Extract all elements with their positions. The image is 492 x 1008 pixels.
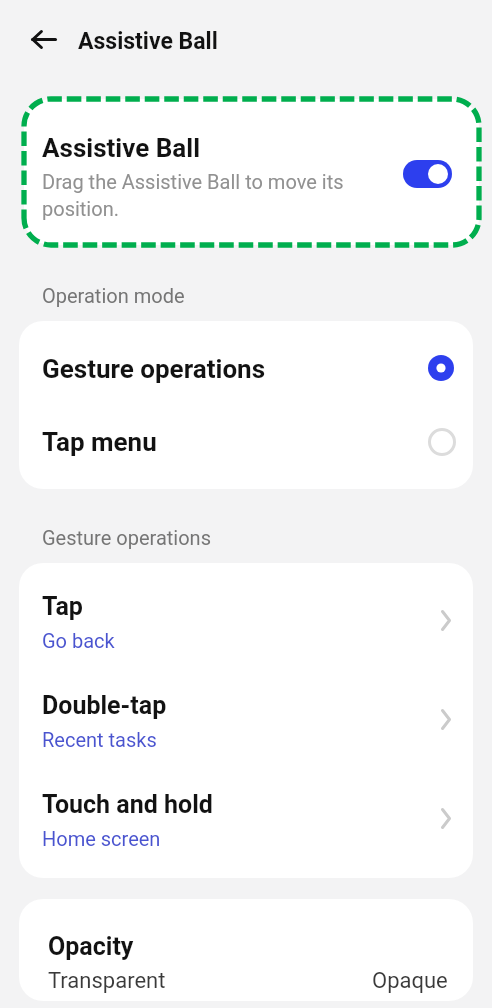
button[interactable]: Assistive Ball toggle <box>403 160 452 188</box>
button[interactable]: Tap menu <box>19 405 473 478</box>
staticText: Assistive Ball <box>78 28 218 55</box>
staticText: Drag the Assistive Ball to move its posi… <box>42 168 344 222</box>
staticText: Tap <box>42 592 83 621</box>
staticText: Go back <box>42 629 115 652</box>
staticText: Recent tasks <box>42 728 157 751</box>
button[interactable]: Double-tap <box>19 670 473 769</box>
staticText: Transparent <box>48 968 166 994</box>
staticText: Gesture operations <box>42 526 211 549</box>
button[interactable]: Touch and hold <box>19 769 473 868</box>
button[interactable]: Gesture operations <box>19 332 473 405</box>
staticText: Home screen <box>42 827 161 850</box>
button[interactable]: Back <box>22 19 66 63</box>
staticText: Opaque <box>372 968 448 994</box>
staticText: Tap menu <box>42 427 157 457</box>
button[interactable]: Assistive Ball <box>24 99 479 245</box>
staticText: Operation mode <box>42 284 185 307</box>
staticText: Gesture operations <box>42 354 266 384</box>
staticText: Double-tap <box>42 691 167 720</box>
staticText: Touch and hold <box>42 790 213 819</box>
staticText: Opacity <box>48 932 134 961</box>
button[interactable]: Tap <box>19 571 473 670</box>
staticText: Assistive Ball <box>42 133 201 163</box>
